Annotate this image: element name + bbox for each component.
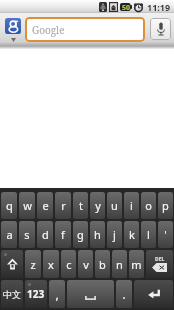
staticText: 中文	[3, 289, 21, 300]
button[interactable]: Voice search	[150, 18, 171, 40]
staticText: p	[162, 198, 169, 213]
staticText: 50	[122, 3, 131, 11]
button[interactable]: Space	[67, 280, 114, 308]
staticText: c	[66, 257, 72, 272]
staticText: Google	[32, 23, 65, 37]
button[interactable]: .	[116, 280, 132, 308]
button[interactable]: f	[55, 221, 71, 248]
staticText: d	[42, 227, 49, 242]
staticText: h	[94, 227, 101, 242]
button[interactable]: m	[129, 250, 144, 278]
staticText: ,	[55, 286, 59, 302]
staticText: a	[6, 227, 13, 242]
staticText: q	[6, 198, 13, 213]
button[interactable]: g	[73, 221, 88, 248]
button[interactable]: h	[90, 221, 105, 248]
button[interactable]: Enter	[134, 280, 173, 308]
staticText: w	[23, 198, 32, 213]
button[interactable]: e	[37, 192, 53, 219]
button[interactable]: i	[124, 192, 139, 219]
staticText: 11:19	[147, 1, 171, 13]
button[interactable]: Numbers	[25, 280, 47, 308]
button[interactable]: t	[73, 192, 88, 219]
button[interactable]: Google	[25, 17, 145, 42]
button[interactable]: w	[19, 192, 35, 219]
button[interactable]: Search provider	[5, 18, 21, 45]
button[interactable]: b	[95, 250, 110, 278]
button[interactable]: '	[158, 221, 173, 248]
button[interactable]: 中文	[1, 280, 23, 308]
staticText: s	[24, 227, 30, 242]
staticText: k	[129, 227, 135, 242]
button[interactable]: Shift	[1, 250, 23, 278]
staticText: z	[30, 257, 36, 272]
button[interactable]: l	[141, 221, 156, 248]
button[interactable]: d	[37, 221, 53, 248]
staticText: e	[42, 198, 49, 213]
staticText: b	[99, 257, 106, 272]
staticText: t	[79, 198, 83, 213]
staticText: i	[130, 198, 133, 213]
button[interactable]: s	[19, 221, 35, 248]
staticText: o	[145, 198, 152, 213]
button[interactable]: r	[55, 192, 71, 219]
button[interactable]: z	[25, 250, 41, 278]
staticText: m	[131, 257, 142, 272]
staticText: n	[116, 257, 123, 272]
button[interactable]: n	[112, 250, 127, 278]
button[interactable]: p	[158, 192, 173, 219]
button[interactable]: Delete	[146, 250, 173, 278]
staticText: l	[147, 227, 150, 242]
staticText: v	[83, 257, 89, 272]
button[interactable]: o	[141, 192, 156, 219]
button[interactable]: u	[107, 192, 122, 219]
staticText: g	[77, 227, 84, 242]
staticText: u	[111, 198, 118, 213]
button[interactable]: q	[1, 192, 17, 219]
staticText: f	[61, 227, 65, 242]
button[interactable]: k	[124, 221, 139, 248]
staticText: 123	[27, 287, 45, 301]
staticText: x	[48, 257, 54, 272]
button[interactable]: x	[43, 250, 59, 278]
staticText: r	[61, 198, 66, 213]
button[interactable]: j	[107, 221, 122, 248]
staticText: DEL	[155, 256, 165, 263]
staticText: j	[113, 227, 116, 242]
button[interactable]: c	[61, 250, 76, 278]
staticText: y	[95, 198, 101, 213]
staticText: .	[122, 286, 126, 302]
button[interactable]: a	[1, 221, 17, 248]
button[interactable]: y	[90, 192, 105, 219]
staticText: '	[164, 227, 167, 242]
button[interactable]: v	[78, 250, 93, 278]
button[interactable]: ,	[49, 280, 65, 308]
